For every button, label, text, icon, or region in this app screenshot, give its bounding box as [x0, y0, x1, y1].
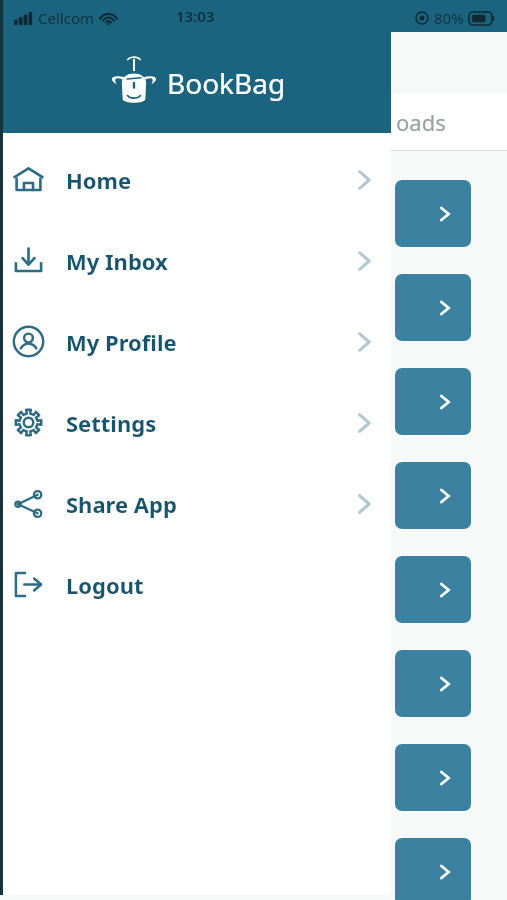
staticText: Share App — [66, 489, 177, 519]
button[interactable] — [395, 368, 471, 435]
button[interactable]: Share App — [0, 463, 391, 544]
staticText: oads — [396, 107, 446, 137]
button[interactable]: My Inbox — [0, 220, 391, 301]
staticText: 80% — [434, 8, 464, 28]
button[interactable] — [395, 744, 471, 811]
button[interactable]: Home — [0, 139, 391, 220]
button[interactable] — [395, 838, 471, 900]
button[interactable]: Logout — [0, 544, 391, 625]
staticText: 13:03 — [176, 6, 215, 26]
button[interactable] — [395, 556, 471, 623]
button[interactable]: Settings — [0, 382, 391, 463]
staticText: Logout — [66, 570, 144, 600]
button[interactable] — [395, 462, 471, 529]
button[interactable]: My Profile — [0, 301, 391, 382]
staticText: Home — [66, 165, 132, 195]
button[interactable] — [395, 180, 471, 247]
staticText: BookBag — [167, 64, 286, 102]
staticText: Cellcom — [38, 8, 94, 28]
staticText: My Profile — [66, 327, 177, 357]
button[interactable] — [395, 274, 471, 341]
staticText: My Inbox — [66, 246, 168, 276]
staticText: Settings — [66, 408, 157, 438]
button[interactable] — [395, 650, 471, 717]
